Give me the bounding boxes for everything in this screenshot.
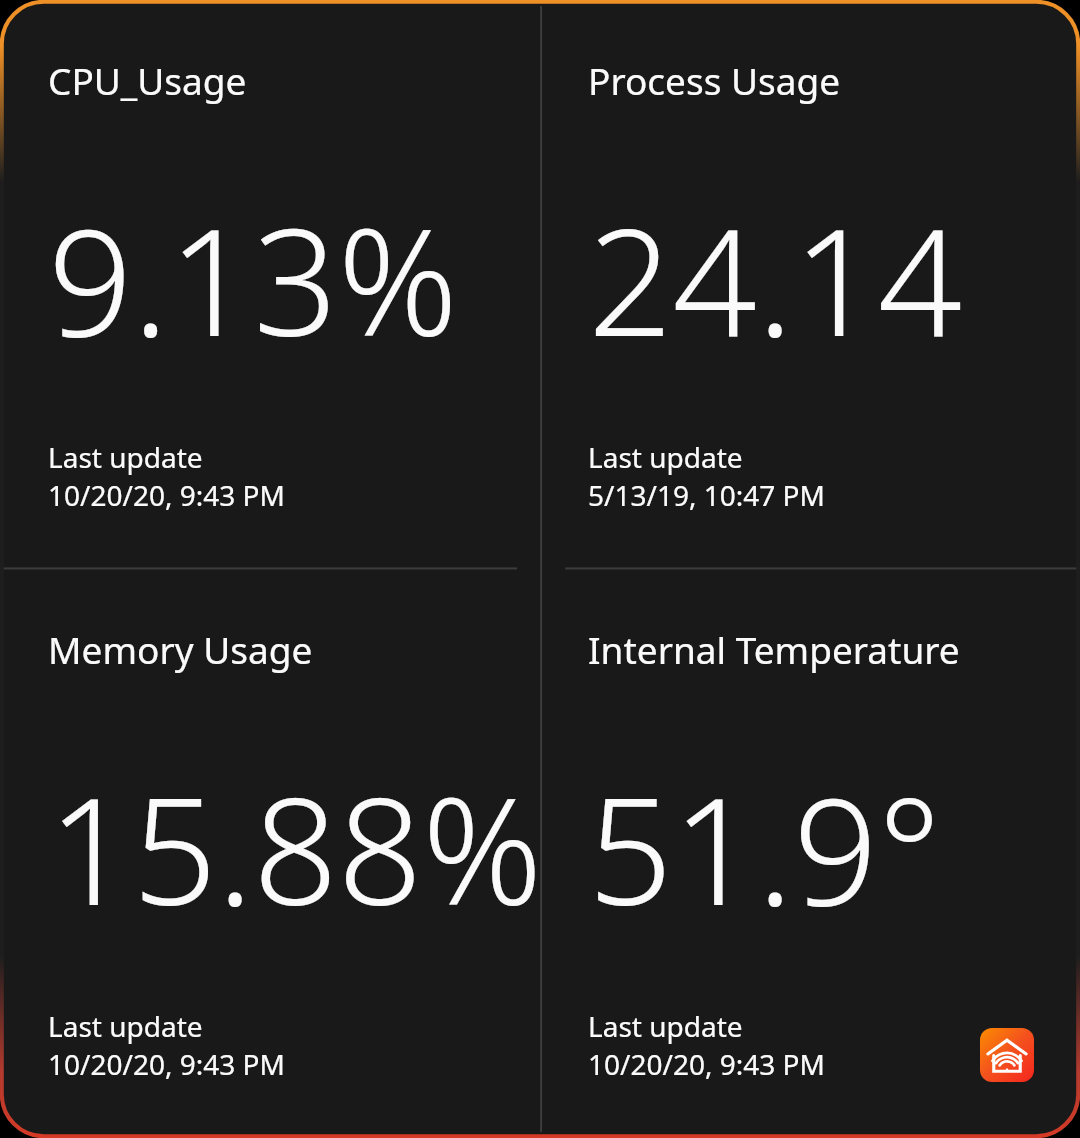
staticText: Last update: [588, 438, 743, 476]
staticText: 10/20/20, 9:43 PM: [48, 1045, 285, 1083]
staticText: Process Usage: [588, 55, 841, 105]
staticText: CPU_Usage: [48, 55, 247, 105]
staticText: Last update: [48, 438, 203, 476]
staticText: 5/13/19, 10:47 PM: [588, 476, 825, 514]
staticText: Internal Temperature: [588, 624, 960, 674]
staticText: 24.14 MB: [588, 178, 1080, 380]
button[interactable]: CPU_Usage: [0, 0, 540, 569]
staticText: 15.88%: [48, 747, 543, 949]
button[interactable]: Home Assistant: [980, 1028, 1034, 1082]
button[interactable]: Internal Temperature: [540, 569, 1080, 1138]
staticText: Memory Usage: [48, 624, 313, 674]
staticText: 10/20/20, 9:43 PM: [48, 476, 285, 514]
button[interactable]: Memory Usage: [0, 569, 540, 1138]
staticText: 9.13%: [48, 178, 458, 380]
button[interactable]: Process Usage: [540, 0, 1080, 569]
staticText: 51.9°: [588, 747, 941, 949]
staticText: Last update: [48, 1007, 203, 1045]
staticText: Last update: [588, 1007, 743, 1045]
staticText: 10/20/20, 9:43 PM: [588, 1045, 825, 1083]
